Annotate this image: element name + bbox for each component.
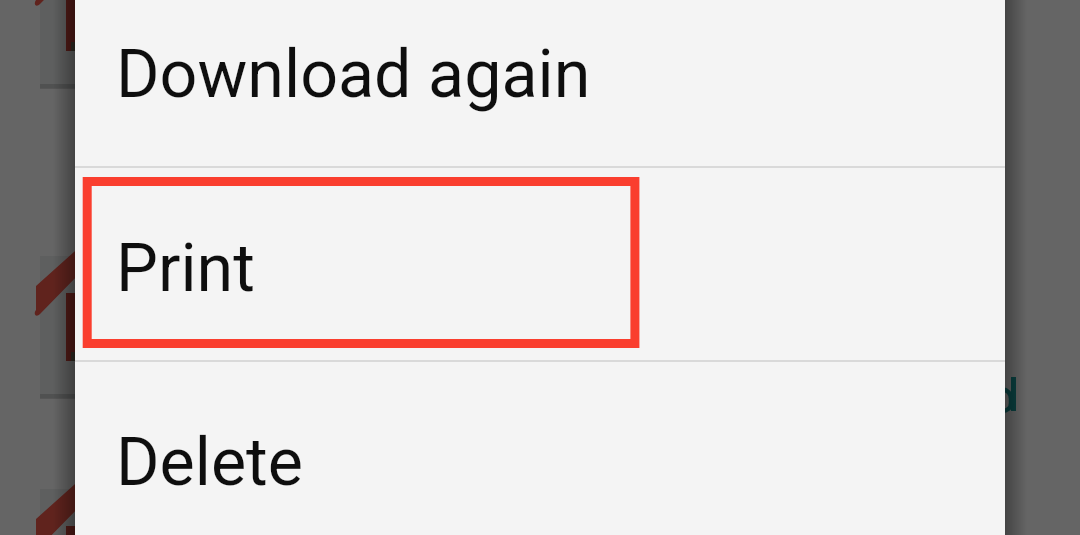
staticText: Print	[116, 229, 255, 307]
button[interactable]: Print	[75, 167, 1005, 361]
button[interactable]: Download again	[75, 0, 1005, 167]
button[interactable]: Delete	[75, 361, 1005, 535]
staticText: Delete	[116, 423, 304, 501]
button[interactable]: Dismiss menu	[0, 0, 1080, 535]
staticText: Download again	[116, 35, 591, 113]
